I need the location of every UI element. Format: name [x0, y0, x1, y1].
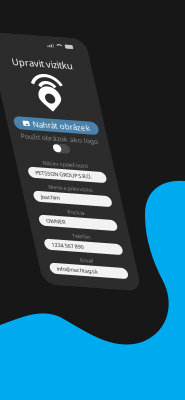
button[interactable]: Joachim — [10, 158, 88, 169]
staticText: PETSSON GROUP S.R.O. — [17, 136, 73, 143]
button[interactable]: Nahrát obrázek — [7, 83, 91, 96]
staticText: Telefón — [40, 197, 58, 204]
button[interactable]: OWNER — [10, 182, 88, 193]
staticText: Email — [42, 221, 55, 228]
staticText: 1234 567 890 — [17, 208, 49, 215]
button[interactable] — [40, 108, 57, 118]
staticText: OWNER — [17, 184, 36, 191]
staticText: Název společnosti — [26, 125, 71, 132]
staticText: Pozícia — [40, 173, 57, 180]
staticText: Použiť obrázok ako logo — [10, 99, 87, 107]
staticText: Nahrát obrázek — [25, 85, 82, 95]
button[interactable]: info@nachtag.sk — [10, 230, 88, 241]
staticText: Meno a priezvisko — [27, 149, 71, 156]
button[interactable]: PETSSON GROUP S.R.O. — [10, 134, 88, 145]
button[interactable]: 1234 567 890 — [10, 206, 88, 217]
staticText: info@nachtag.sk — [17, 232, 58, 239]
